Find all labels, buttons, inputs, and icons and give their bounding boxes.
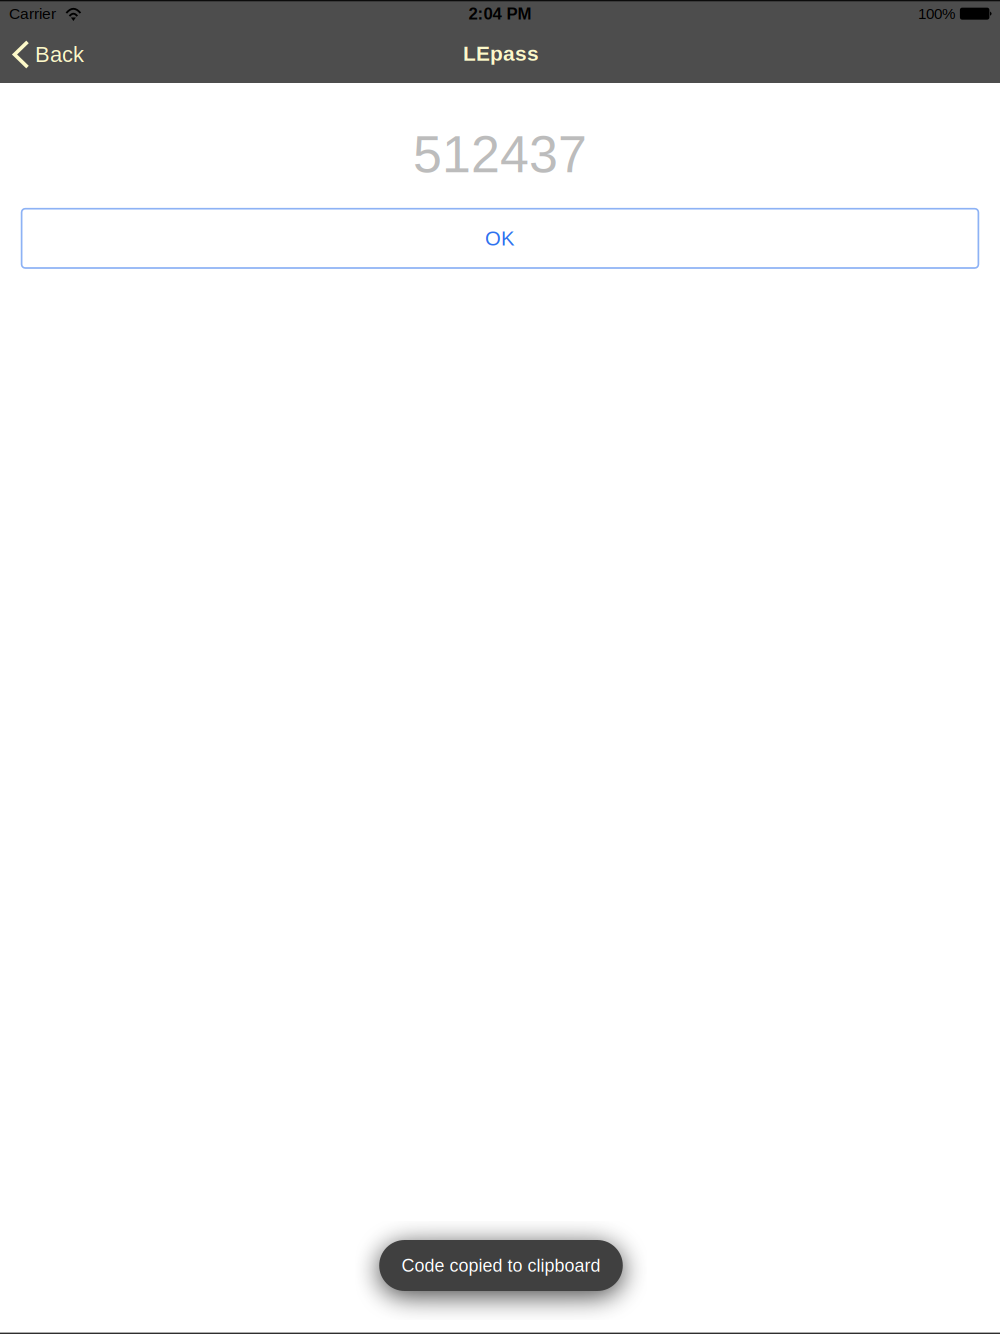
button[interactable]: OK [22,209,978,268]
button[interactable]: Back [0,26,96,83]
staticText: OK [485,227,515,250]
staticText: LEpass [463,42,539,65]
staticText: Back [35,42,84,67]
staticText: Carrier [9,5,56,22]
staticText: 512437 [413,125,587,183]
staticText: Code copied to clipboard [401,1255,600,1275]
button[interactable]: 512437 [0,83,1000,209]
staticText: 2:04 PM [468,4,531,23]
staticText: 100% [918,5,955,22]
